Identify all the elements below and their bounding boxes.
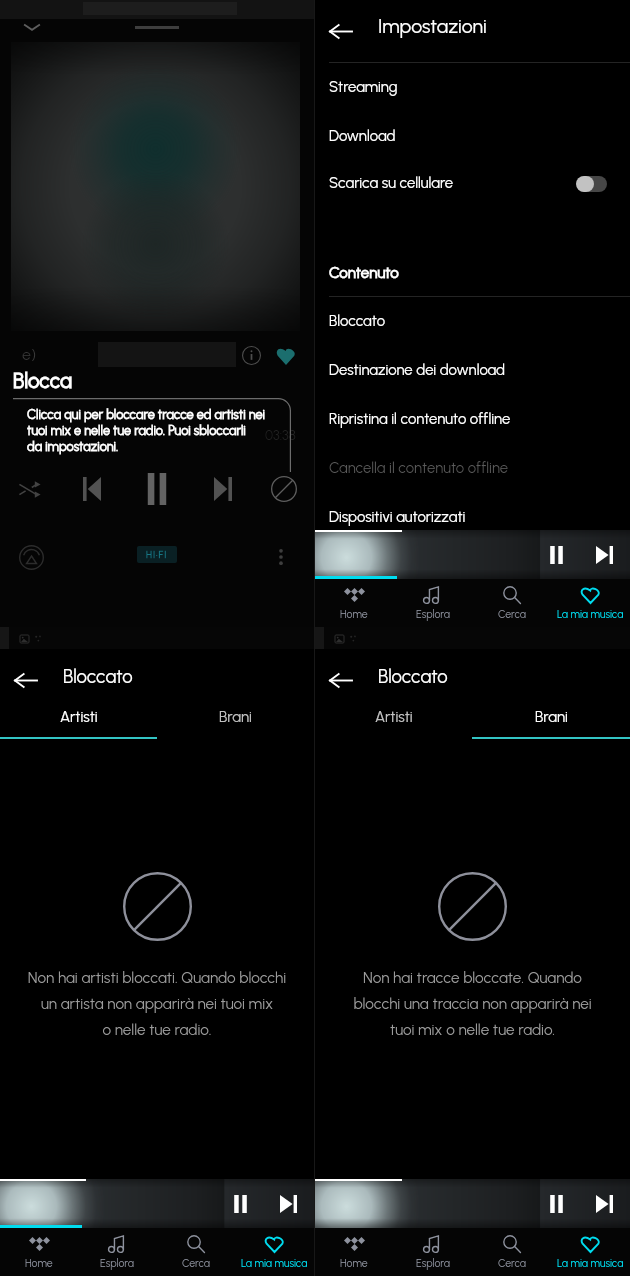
staticText: Bloccato	[378, 665, 448, 687]
button[interactable]: Block	[267, 472, 301, 506]
staticText: Clicca qui per bloccare tracce ed artist…	[27, 407, 265, 454]
button[interactable]: Cerca	[156, 1228, 235, 1276]
staticText: Artisti	[60, 708, 98, 726]
staticText: Download	[329, 127, 396, 145]
staticText: Home	[25, 1257, 53, 1270]
staticText: Bloccato	[329, 312, 386, 330]
button[interactable]: Dispositivi autorizzati	[315, 492, 630, 541]
button[interactable]: Cancella il contenuto offline	[315, 443, 630, 492]
button[interactable]: Home	[315, 1228, 393, 1276]
button[interactable]: Brani	[472, 694, 630, 739]
staticText: HI·FI	[146, 549, 168, 560]
button[interactable]: Download	[315, 111, 630, 160]
button[interactable]: Streaming	[315, 62, 630, 111]
button[interactable]: Esplora	[78, 1228, 156, 1276]
button[interactable]: Next	[586, 537, 622, 573]
staticText: Non hai tracce bloccate. Quando blocchi …	[339, 968, 606, 1038]
staticText: Esplora	[100, 1257, 134, 1270]
staticText: Contenuto	[329, 264, 399, 282]
button[interactable]: Artisti	[315, 694, 472, 739]
staticText: Destinazione dei download	[329, 361, 506, 379]
staticText: Bloccato	[63, 665, 133, 687]
button[interactable]	[577, 176, 607, 192]
staticText: Cerca	[498, 608, 526, 621]
button[interactable]: Cerca	[472, 579, 551, 627]
staticText: Scarica su cellulare	[329, 174, 454, 192]
button[interactable]: La mia musica	[551, 1228, 630, 1276]
button[interactable]: Previous	[74, 471, 110, 507]
button[interactable]: Home	[0, 1228, 78, 1276]
button[interactable]: Esplora	[393, 579, 472, 627]
staticText: La mia musica	[557, 1257, 624, 1270]
button[interactable]: Back	[14, 672, 37, 689]
button[interactable]: Collapse	[20, 18, 44, 36]
button[interactable]: Pause	[136, 469, 178, 509]
staticText: Ripristina il contenuto offline	[329, 410, 511, 428]
staticText: Non hai artisti bloccati. Quando blocchi…	[24, 968, 290, 1038]
button[interactable]: Next	[270, 1186, 306, 1222]
button[interactable]: Esplora	[393, 1228, 472, 1276]
staticText: Blocca	[13, 369, 72, 394]
button[interactable]: Shuffle	[13, 472, 47, 506]
staticText: Home	[340, 608, 368, 621]
button[interactable]: Back	[329, 23, 352, 40]
staticText: La mia musica	[557, 608, 624, 621]
staticText: Cancella il contenuto offline	[329, 459, 509, 477]
button[interactable]: Info	[242, 346, 261, 365]
button[interactable]: La mia musica	[551, 579, 630, 627]
staticText: Brani	[219, 708, 252, 726]
button[interactable]: Pause	[538, 1186, 574, 1222]
staticText: Streaming	[329, 78, 398, 96]
staticText: Dispositivi autorizzati	[329, 508, 466, 526]
button[interactable]: Bloccato	[315, 296, 630, 345]
staticText: Impostazioni	[378, 14, 487, 37]
button[interactable]: Home	[315, 579, 393, 627]
button[interactable]: Back	[329, 672, 352, 689]
staticText: Esplora	[416, 608, 450, 621]
staticText: Esplora	[416, 1257, 450, 1270]
button[interactable]: Ripristina il contenuto offline	[315, 394, 630, 443]
staticText: 03:38	[265, 427, 296, 443]
button[interactable]: Pause	[538, 537, 574, 573]
button[interactable]: Favourite	[276, 347, 296, 365]
staticText: e)	[22, 345, 37, 364]
button[interactable]: Cerca	[472, 1228, 551, 1276]
staticText: Cerca	[182, 1257, 210, 1270]
button[interactable]: HI·FI	[137, 546, 177, 563]
button[interactable]: Pause	[222, 1186, 258, 1222]
staticText: Artisti	[375, 708, 413, 726]
staticText: Home	[340, 1257, 368, 1270]
button[interactable]: More options	[279, 549, 283, 565]
button[interactable]: Destinazione dei download	[315, 345, 630, 394]
button[interactable]: Next	[205, 471, 241, 507]
button[interactable]: Cast	[19, 545, 44, 570]
button[interactable]: La mia musica	[235, 1228, 314, 1276]
button[interactable]: Scarica su cellulare	[315, 158, 630, 207]
button[interactable]: Artisti	[0, 694, 157, 739]
button[interactable]: Next	[586, 1186, 622, 1222]
staticText: Brani	[535, 708, 568, 726]
button[interactable]: Brani	[157, 694, 314, 739]
staticText: Cerca	[498, 1257, 526, 1270]
staticText: La mia musica	[241, 1257, 308, 1270]
